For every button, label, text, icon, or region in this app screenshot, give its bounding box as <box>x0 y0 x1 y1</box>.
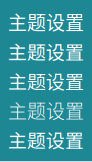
staticText: 主题设置 <box>8 37 84 65</box>
staticText: 主题设置 <box>8 96 84 124</box>
staticText: 主题设置 <box>8 126 84 153</box>
staticText: 主题设置 <box>8 8 84 35</box>
staticText: 主题设置 <box>8 67 84 94</box>
